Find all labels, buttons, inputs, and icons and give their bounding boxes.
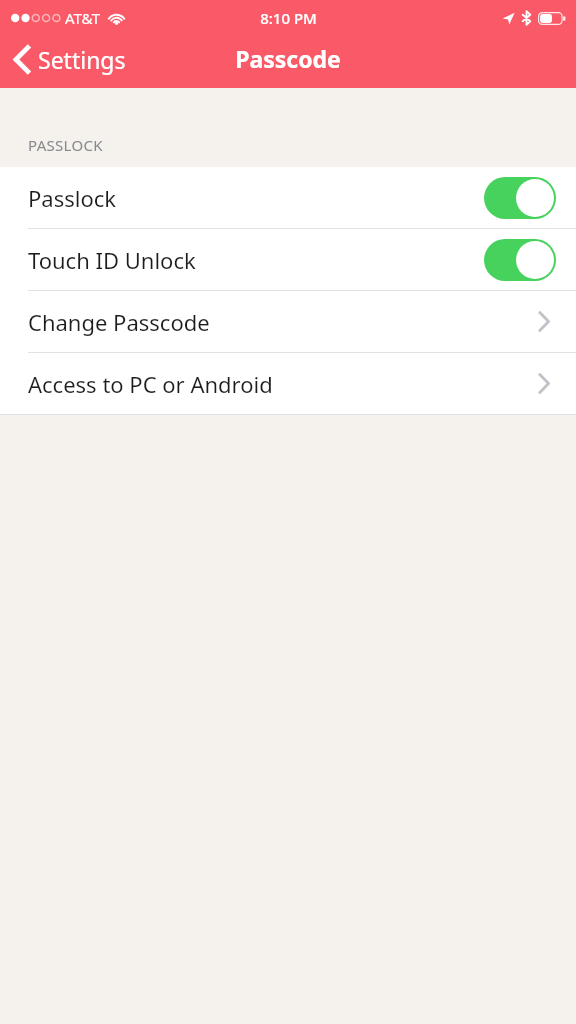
button[interactable]: Settings xyxy=(0,38,138,81)
staticText: Access to PC or Android xyxy=(28,369,273,399)
button[interactable]: Passlock xyxy=(0,167,576,228)
button[interactable]: Toggle Passlock xyxy=(484,177,556,219)
staticText: Settings xyxy=(38,44,126,75)
staticText: Passcode xyxy=(235,43,341,74)
button[interactable]: Touch ID Unlock xyxy=(0,229,576,290)
staticText: AT&T xyxy=(65,8,100,28)
button[interactable]: Toggle Touch ID Unlock xyxy=(484,239,556,281)
staticText: Change Passcode xyxy=(28,307,210,337)
button[interactable]: Access to PC or Android xyxy=(0,353,576,414)
staticText: 8:10 PM xyxy=(260,8,317,28)
staticText: Passlock xyxy=(28,183,117,213)
button[interactable]: Change Passcode xyxy=(0,291,576,352)
staticText: PASSLOCK xyxy=(28,135,103,155)
staticText: Touch ID Unlock xyxy=(28,245,196,275)
